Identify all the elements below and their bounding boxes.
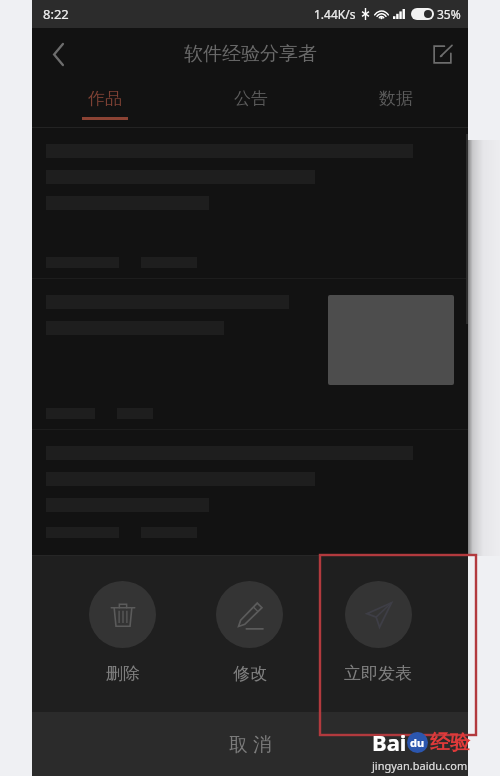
button[interactable]: 修改 (212, 581, 287, 684)
staticText: 数据 (379, 88, 413, 109)
staticText: du (410, 735, 425, 750)
button[interactable]: 删除 (85, 581, 160, 684)
staticText: 取 消 (229, 731, 272, 757)
staticText: 公告 (234, 88, 268, 109)
staticText: 作品 (88, 88, 122, 109)
staticText: 修改 (233, 663, 267, 684)
button[interactable]: Edit (416, 28, 468, 80)
staticText: 1.44K/s (314, 6, 356, 22)
button[interactable]: 公告 (178, 80, 323, 127)
staticText: 经验 (430, 730, 470, 755)
button[interactable]: 作品 (32, 80, 178, 127)
staticText: 立即发表 (344, 663, 412, 684)
staticText: jingyan.baidu.com (372, 758, 468, 773)
button[interactable]: 数据 (323, 80, 468, 127)
button[interactable]: 取 消 (32, 712, 468, 776)
button[interactable]: 立即发表 (340, 581, 416, 684)
staticText: 删除 (106, 663, 140, 684)
button[interactable]: Back (32, 28, 84, 80)
staticText: 软件经验分享者 (184, 42, 317, 66)
staticText: 35% (437, 6, 461, 22)
staticText: Bai (372, 727, 407, 757)
staticText: 8:22 (43, 5, 69, 23)
